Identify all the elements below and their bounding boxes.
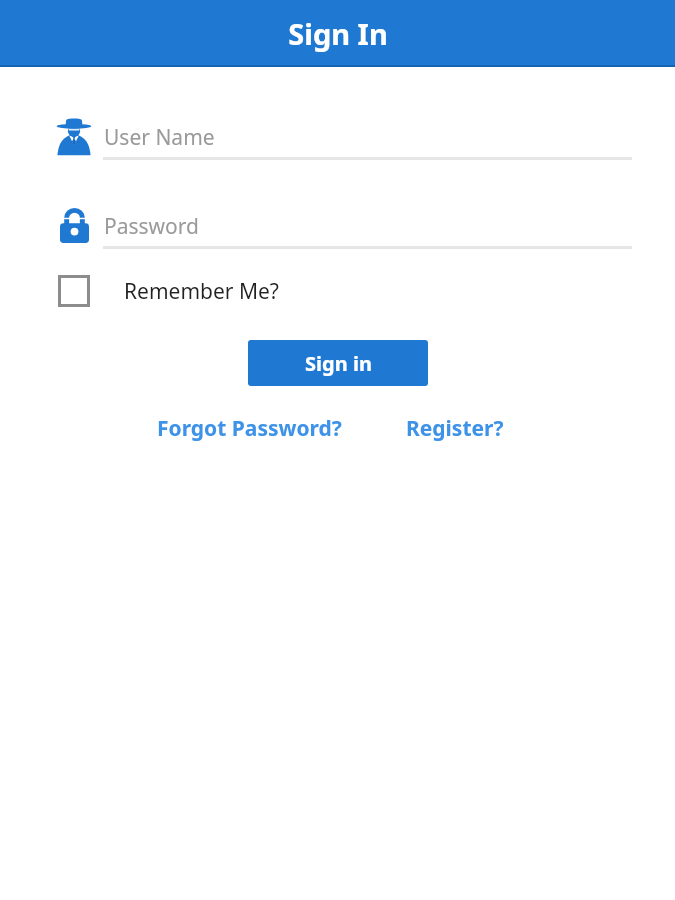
staticText: Forgot Password?: [157, 414, 342, 443]
button[interactable]: Password: [0, 206, 675, 246]
button[interactable]: Register?: [406, 414, 504, 443]
other: Password: [60, 209, 89, 243]
staticText: Remember Me?: [124, 277, 279, 306]
button[interactable]: Forgot Password?: [157, 414, 342, 443]
staticText: User Name: [104, 123, 215, 152]
staticText: Sign in: [305, 350, 372, 377]
staticText: Password: [104, 212, 199, 241]
button[interactable]: Remember Me?: [0, 275, 675, 307]
other: User name: [56, 118, 92, 156]
staticText: Register?: [406, 414, 504, 443]
staticText: Sign In: [288, 14, 388, 53]
button[interactable]: User name: [0, 117, 675, 157]
button[interactable]: Sign in: [248, 340, 428, 386]
